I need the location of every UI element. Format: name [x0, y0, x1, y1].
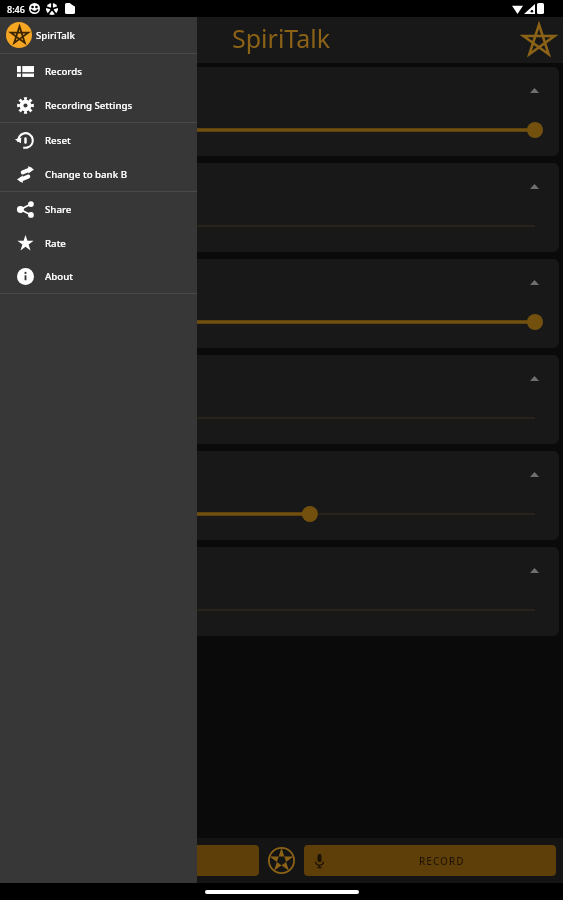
button[interactable]: About: [0, 260, 197, 293]
staticText: Records: [45, 65, 82, 78]
button[interactable]: Pentagram: [259, 845, 304, 876]
button[interactable]: SpiriTalk: [0, 17, 197, 53]
button[interactable]: STOP: [7, 845, 259, 876]
button[interactable]: Reset: [0, 123, 197, 157]
button[interactable]: [4, 67, 559, 156]
staticText: Share: [45, 203, 72, 216]
button[interactable]: [4, 259, 559, 348]
staticText: About: [45, 270, 74, 283]
button[interactable]: RECORD: [304, 845, 556, 876]
button[interactable]: [4, 547, 559, 636]
staticText: Reset: [45, 134, 71, 147]
button[interactable]: [4, 163, 559, 252]
staticText: Change to bank B: [45, 168, 127, 181]
staticText: Recording Settings: [45, 99, 133, 112]
button[interactable]: Recording Settings: [0, 88, 197, 122]
button[interactable]: Change to bank B: [0, 157, 197, 191]
button[interactable]: [4, 355, 559, 444]
button[interactable]: Records: [0, 54, 197, 88]
staticText: SpiriTalk: [36, 29, 75, 42]
staticText: SpiriTalk: [232, 21, 331, 55]
staticText: RECORD: [419, 854, 465, 868]
staticText: 8:46: [7, 3, 25, 15]
button[interactable]: Pentagram: [516, 19, 558, 61]
button[interactable]: Share: [0, 192, 197, 226]
staticText: Rate: [45, 237, 66, 250]
button[interactable]: [4, 451, 559, 540]
button[interactable]: Rate: [0, 226, 197, 260]
